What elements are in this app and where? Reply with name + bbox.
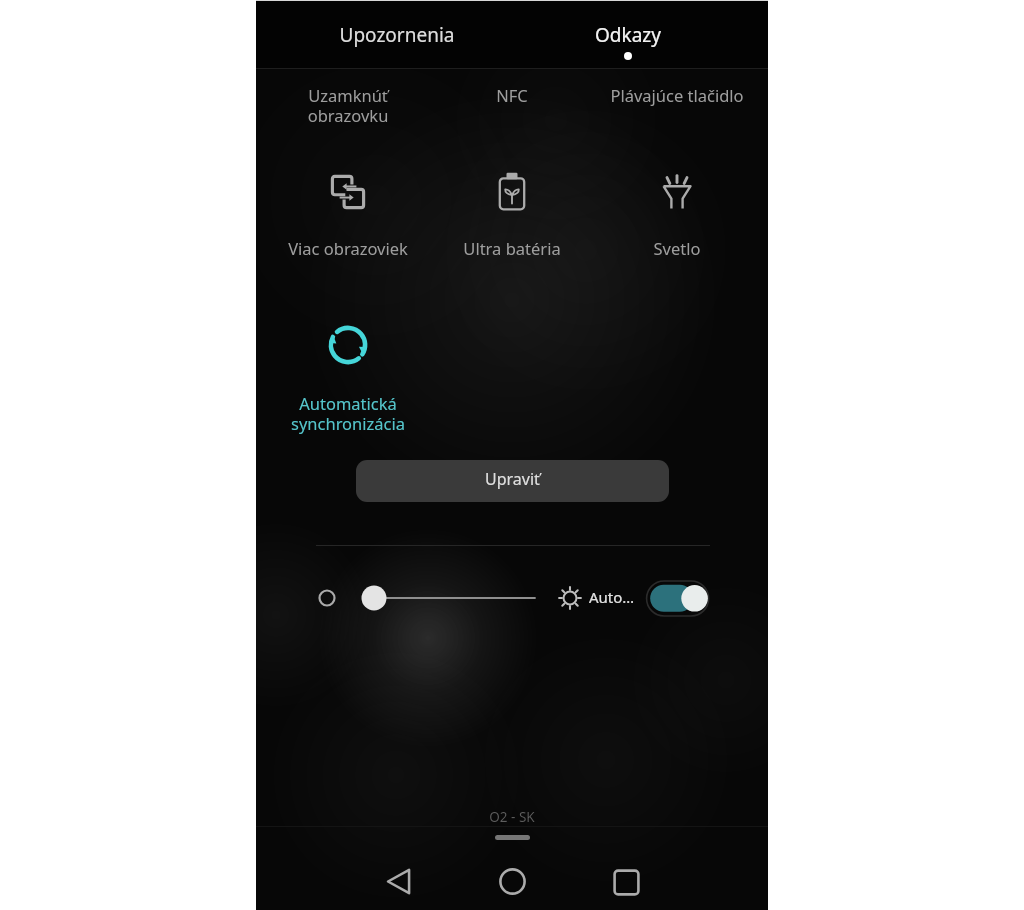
- staticText: Ultra batéria: [430, 237, 594, 259]
- staticText: Upraviť: [485, 468, 540, 490]
- button[interactable]: NFC: [430, 70, 594, 132]
- button[interactable]: Upraviť: [356, 460, 669, 502]
- staticText: Upozornenia: [297, 22, 497, 48]
- button[interactable]: Odkazy: [528, 0, 728, 68]
- staticText: Uzamknúť: [266, 84, 430, 106]
- staticText: Auto…: [589, 587, 635, 607]
- button[interactable]: Automatická: [266, 315, 430, 437]
- button[interactable]: Plávajúce tlačidlo: [595, 70, 759, 132]
- button[interactable]: Brightness slider: [316, 575, 556, 621]
- staticText: obrazovku: [266, 104, 430, 126]
- button[interactable]: Auto brightness: [646, 580, 710, 618]
- staticText: Viac obrazoviek: [266, 237, 430, 259]
- button[interactable]: Back: [369, 851, 429, 910]
- button[interactable]: Recents: [596, 852, 656, 910]
- staticText: synchronizácia: [266, 412, 430, 434]
- staticText: Odkazy: [528, 22, 728, 48]
- button[interactable]: Upozornenia: [297, 0, 497, 68]
- staticText: Automatická: [266, 392, 430, 414]
- staticText: NFC: [430, 84, 594, 106]
- staticText: O2 - SK: [256, 808, 768, 826]
- button[interactable]: Svetlo: [595, 160, 759, 268]
- button[interactable]: Ultra batéria: [430, 160, 594, 268]
- button[interactable]: Uzamknúť: [266, 70, 430, 132]
- button[interactable]: Viac obrazoviek: [266, 160, 430, 268]
- button[interactable]: Home: [482, 851, 542, 910]
- staticText: Plávajúce tlačidlo: [595, 84, 759, 106]
- staticText: Svetlo: [595, 237, 759, 259]
